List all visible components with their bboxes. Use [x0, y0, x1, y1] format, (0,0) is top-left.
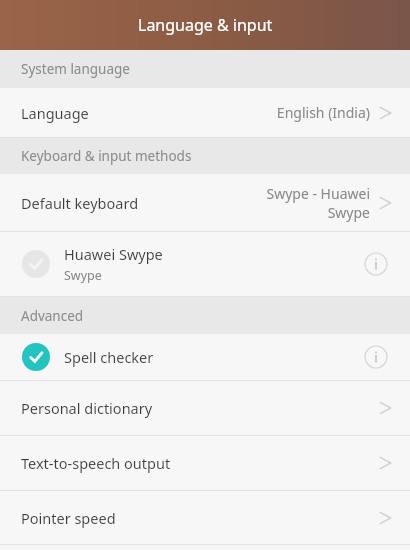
staticText: Swype - Huawei Swype — [266, 184, 370, 222]
staticText: Advanced — [21, 307, 84, 325]
staticText: Default keyboard — [21, 193, 139, 213]
staticText: Language & input — [138, 14, 273, 36]
staticText: Personal dictionary — [21, 398, 153, 418]
button[interactable]: Spell checker info — [356, 337, 396, 377]
staticText: Pointer speed — [21, 508, 116, 528]
button[interactable]: Huawei Swype info — [356, 244, 396, 284]
staticText: Swype — [64, 267, 102, 284]
button[interactable]: Text-to-speech output — [0, 436, 410, 490]
button[interactable]: Personal dictionary — [0, 381, 410, 435]
button[interactable]: Default keyboard — [0, 174, 410, 231]
button[interactable]: Language — [0, 88, 410, 137]
staticText: Huawei Swype — [64, 244, 163, 264]
staticText: Spell checker — [64, 347, 154, 367]
staticText: Keyboard & input methods — [21, 147, 192, 165]
staticText: System language — [21, 60, 130, 78]
button[interactable]: Pointer speed — [0, 491, 410, 544]
staticText: English (India) — [276, 103, 370, 122]
staticText: Language — [21, 103, 89, 123]
button[interactable]: Spell checker — [0, 334, 410, 380]
button[interactable]: Huawei Swype — [0, 232, 410, 296]
staticText: Text-to-speech output — [21, 453, 171, 473]
